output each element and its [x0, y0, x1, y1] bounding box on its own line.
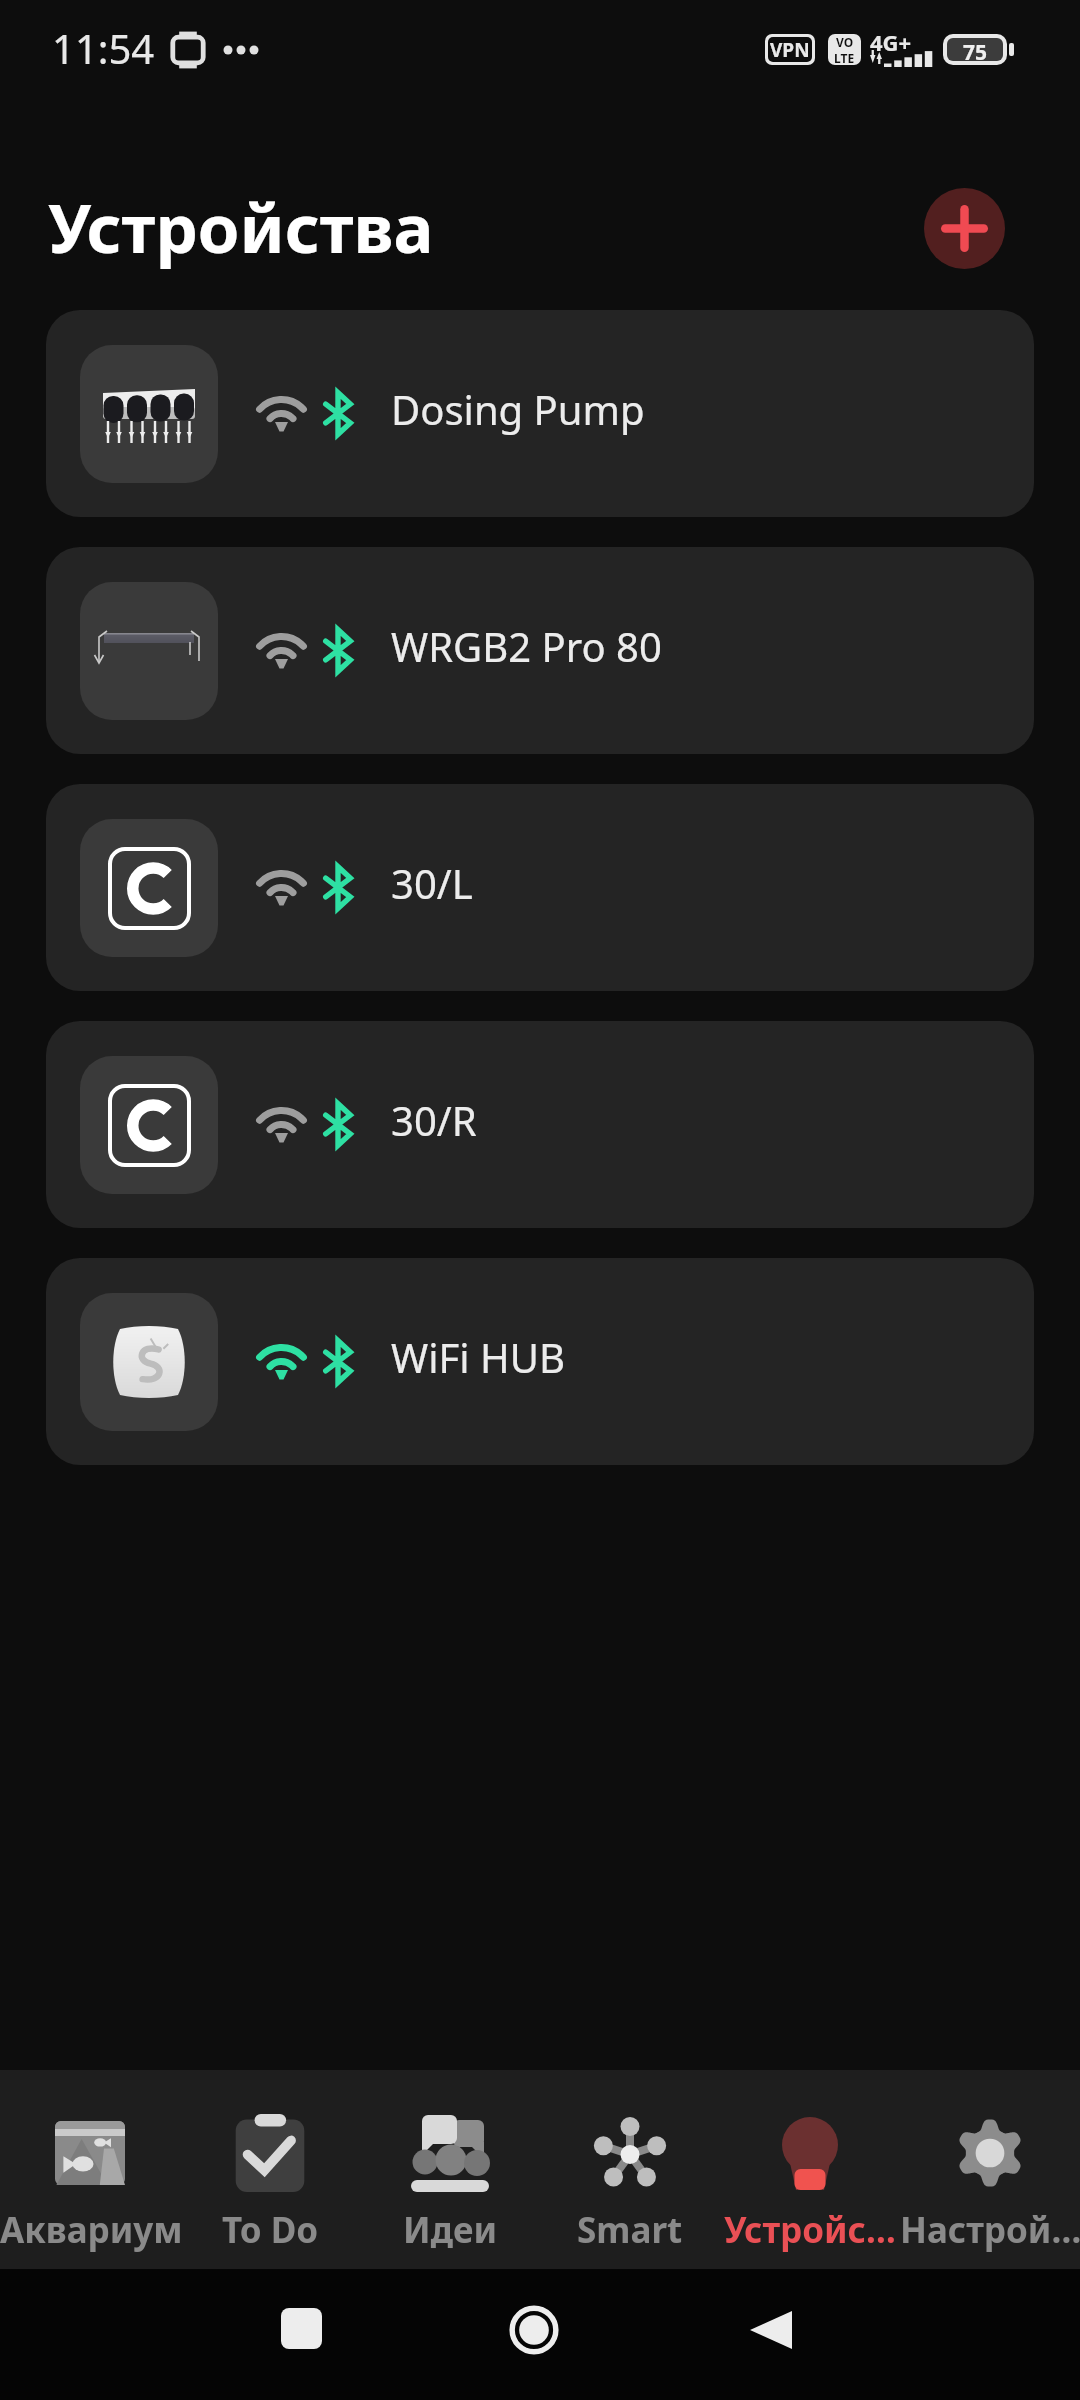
button[interactable]: Back: [750, 2311, 792, 2349]
staticText: Идеи: [403, 2206, 498, 2248]
staticText: Устройства: [48, 181, 434, 272]
button[interactable]: Настрой…: [900, 2092, 1080, 2248]
staticText: LTE: [834, 50, 855, 65]
staticText: Dosing Pump: [391, 382, 645, 436]
button[interactable]: Add device: [924, 188, 1005, 269]
staticText: Аквариум: [0, 2206, 180, 2248]
staticText: Настрой…: [900, 2206, 1080, 2248]
button[interactable]: 30/L: [46, 784, 1034, 991]
staticText: 30/R: [391, 1093, 477, 1147]
staticText: To Do: [222, 2206, 319, 2248]
staticText: 11:54: [52, 21, 155, 75]
staticText: 75: [963, 38, 988, 61]
button[interactable]: To Do: [180, 2092, 360, 2248]
staticText: Smart: [577, 2206, 683, 2248]
staticText: Устройс…: [724, 2206, 896, 2248]
button[interactable]: Home: [508, 2304, 560, 2356]
staticText: 30/L: [391, 856, 473, 910]
staticText: WiFi HUB: [391, 1330, 565, 1384]
button[interactable]: Идеи: [360, 2092, 540, 2248]
button[interactable]: Устройс…: [720, 2092, 900, 2248]
button[interactable]: Smart: [540, 2092, 720, 2248]
button[interactable]: Dosing Pump: [46, 310, 1034, 517]
button[interactable]: Аквариум: [0, 2092, 180, 2248]
staticText: WRGB2 Pro 80: [391, 619, 662, 673]
staticText: VPN: [770, 37, 810, 62]
button[interactable]: WRGB2 Pro 80: [46, 547, 1034, 754]
button[interactable]: WiFi HUB: [46, 1258, 1034, 1465]
button[interactable]: 30/R: [46, 1021, 1034, 1228]
staticText: VO: [836, 34, 854, 50]
button[interactable]: Recents: [281, 2308, 322, 2349]
staticText: 4G+: [870, 27, 912, 57]
